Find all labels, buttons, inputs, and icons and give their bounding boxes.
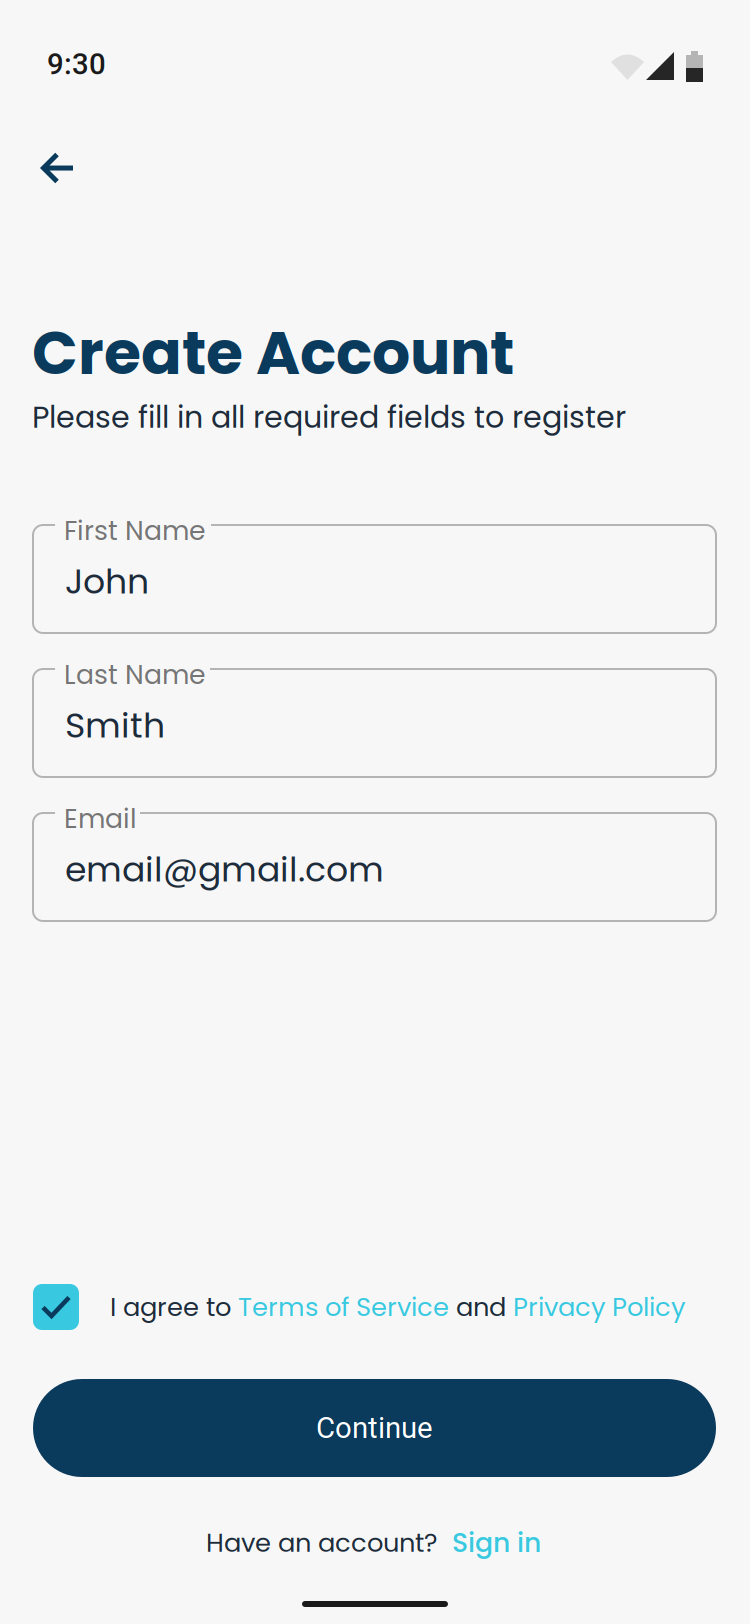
staticText: 9:30: [47, 47, 106, 81]
staticText: Please fill in all required fields to re…: [32, 396, 626, 438]
staticText: I agree to: [110, 1289, 238, 1325]
button[interactable]: Terms of Service: [238, 1289, 449, 1325]
staticText: Sign in: [452, 1524, 541, 1561]
staticText: Last Name: [64, 656, 206, 693]
staticText: Terms of Service: [238, 1289, 449, 1325]
staticText: First Name: [64, 512, 206, 549]
staticText: and: [449, 1289, 513, 1325]
staticText: Have an account?: [206, 1525, 437, 1561]
staticText: Email: [64, 800, 137, 837]
button[interactable]: Privacy Policy: [513, 1289, 685, 1325]
button[interactable]: Back: [22, 132, 94, 204]
staticText: John: [65, 557, 149, 605]
staticText: Create Account: [32, 311, 514, 395]
staticText: Smith: [65, 701, 165, 749]
staticText: Continue: [316, 1411, 433, 1445]
button[interactable]: I agree to the terms: [33, 1284, 79, 1330]
button[interactable]: Continue: [33, 1379, 716, 1477]
staticText: email@gmail.com: [65, 845, 384, 893]
staticText: Privacy Policy: [513, 1289, 685, 1325]
button[interactable]: Sign in: [452, 1524, 541, 1561]
